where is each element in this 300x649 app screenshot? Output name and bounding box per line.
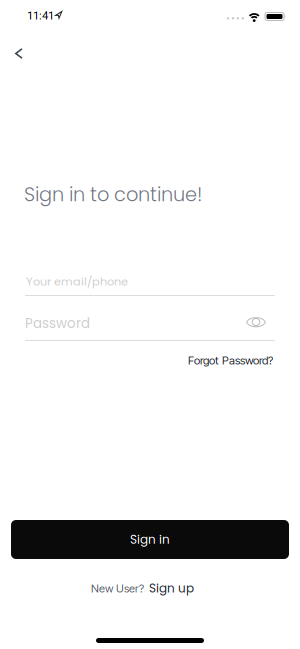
button[interactable]: Sign in [11,520,289,559]
button[interactable]: Sign up [149,580,194,597]
staticText: Sign in [130,531,170,548]
staticText: Password [25,314,90,333]
staticText: Your email/phone [26,273,128,289]
button[interactable]: Forgot Password? [188,353,273,367]
staticText: New User? [91,582,144,595]
staticText: Forgot Password? [188,353,273,367]
staticText: 11:41 [27,9,54,22]
button[interactable]: Show password [242,313,270,332]
staticText: Sign up [149,580,194,597]
staticText: Sign in to continue! [24,181,202,208]
button[interactable]: Back [7,40,31,67]
